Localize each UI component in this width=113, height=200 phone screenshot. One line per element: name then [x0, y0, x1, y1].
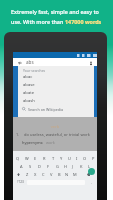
- staticText: abac: [23, 74, 33, 80]
- button[interactable]: C: [39, 170, 47, 178]
- staticText: R: [43, 156, 46, 161]
- staticText: Z: [26, 172, 29, 177]
- button[interactable]: ?123: [15, 178, 25, 186]
- staticText: Q: [16, 156, 20, 161]
- staticText: U: [68, 156, 71, 161]
- button[interactable]: Backspace: [79, 170, 97, 178]
- staticText: J: [72, 164, 74, 169]
- button[interactable]: B: [55, 170, 63, 178]
- staticText: ?123: [17, 180, 24, 184]
- button[interactable]: A: [17, 162, 26, 170]
- staticText: A: [20, 164, 23, 169]
- button[interactable]: P: [89, 154, 97, 162]
- staticText: abash: [23, 98, 35, 104]
- staticText: D: [38, 164, 41, 169]
- button[interactable]: G: [53, 162, 61, 170]
- button[interactable]: Y: [57, 154, 65, 162]
- button[interactable]: E: [31, 154, 40, 162]
- staticText: B: [58, 172, 61, 177]
- staticText: do useless, wasteful, or trivial work: [24, 132, 90, 137]
- staticText: 1.: [16, 132, 20, 137]
- staticText: 147000 words: [65, 18, 102, 25]
- staticText: use. With more than: [11, 18, 65, 25]
- button[interactable]: I: [73, 154, 81, 162]
- button[interactable]: S: [26, 162, 35, 170]
- button[interactable]: F: [44, 162, 53, 170]
- staticText: G: [56, 164, 59, 169]
- staticText: Y: [60, 156, 63, 161]
- staticText: V: [50, 172, 53, 177]
- staticText: I: [76, 156, 78, 161]
- button[interactable]: abate: [18, 89, 94, 97]
- staticText: M: [73, 172, 77, 177]
- button[interactable]: X: [31, 170, 39, 178]
- button[interactable]: Voice search: [88, 60, 93, 65]
- button[interactable]: L: [85, 162, 93, 170]
- button[interactable]: M: [71, 170, 79, 178]
- button[interactable]: Search on Wikipedia: [18, 105, 94, 113]
- staticText: C: [42, 172, 45, 177]
- button[interactable]: J: [69, 162, 77, 170]
- button[interactable]: Enter: [88, 168, 95, 175]
- staticText: Search on Wikipedia: [28, 107, 64, 112]
- staticText: abase: [23, 82, 35, 88]
- button[interactable]: U: [65, 154, 73, 162]
- staticText: X: [34, 172, 37, 177]
- button[interactable]: abash: [18, 97, 94, 105]
- staticText: Your searches: [23, 68, 46, 73]
- button[interactable]: Back: [17, 60, 22, 65]
- staticText: L: [88, 164, 91, 169]
- button[interactable]: abac: [18, 73, 94, 81]
- staticText: abate: [23, 90, 35, 96]
- staticText: N: [65, 172, 69, 177]
- button[interactable]: O: [81, 154, 89, 162]
- button[interactable]: Shift: [13, 170, 23, 178]
- staticText: H: [64, 164, 67, 169]
- staticText: O: [83, 156, 87, 161]
- button[interactable]: Q: [13, 154, 22, 162]
- staticText: W: [25, 156, 29, 161]
- staticText: abs: [26, 59, 34, 65]
- staticText: Extremely fast, simple and easy to: [11, 8, 99, 15]
- staticText: work: [46, 140, 55, 145]
- staticText: P: [92, 156, 95, 161]
- staticText: F: [47, 164, 50, 169]
- staticText: .: [91, 180, 93, 185]
- staticText: E: [34, 156, 37, 161]
- button[interactable]: N: [63, 170, 71, 178]
- button[interactable]: V: [47, 170, 55, 178]
- button[interactable]: D: [35, 162, 44, 170]
- button[interactable]: abase: [18, 81, 94, 89]
- button[interactable]: Z: [23, 170, 31, 178]
- staticText: hypernyms:: [22, 140, 44, 145]
- staticText: S: [29, 164, 32, 169]
- button[interactable]: W: [22, 154, 31, 162]
- button[interactable]: T: [49, 154, 57, 162]
- button[interactable]: H: [61, 162, 69, 170]
- staticText: K: [80, 164, 83, 169]
- staticText: verb: [13, 124, 97, 129]
- staticText: T: [52, 156, 55, 161]
- button[interactable]: R: [40, 154, 49, 162]
- button[interactable]: K: [77, 162, 85, 170]
